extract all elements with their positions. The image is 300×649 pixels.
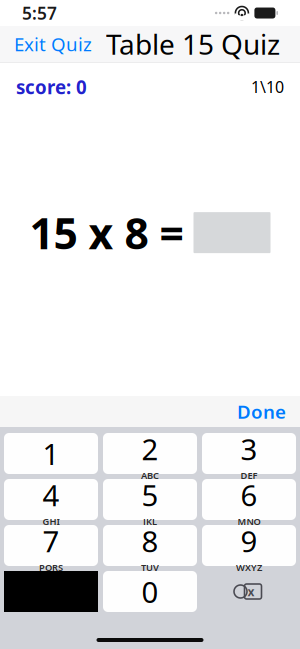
staticText: 1\10 [251,76,284,97]
button[interactable]: 9 [202,525,296,566]
button[interactable]: 7 [4,525,98,566]
button[interactable]: 0 [103,571,197,612]
staticText: TUV [141,561,159,574]
staticText: PQRS [39,561,63,574]
staticText: Exit Quiz [14,32,92,56]
staticText: WXYZ [236,561,262,574]
button[interactable]: 6 [202,479,296,520]
button[interactable]: 3 [202,433,296,474]
staticText: JKL [143,515,157,528]
button[interactable]: 5 [103,479,197,520]
button[interactable]: 2 [103,433,197,474]
staticText: 1 [42,434,59,473]
staticText: 4 [42,475,59,514]
button[interactable]: 8 [103,525,197,566]
staticText: 8 [141,521,158,560]
staticText: Table 15 Quiz [106,25,280,63]
staticText: DEF [240,469,257,482]
staticText: ABC [141,469,159,482]
staticText: 7 [42,521,59,560]
staticText: 3 [240,429,257,468]
staticText: x [247,583,254,599]
staticText: 5:57 [22,1,57,24]
staticText: 9 [240,521,257,560]
staticText: 2 [141,429,158,468]
staticText: score: 0 [16,74,87,99]
button[interactable]: Exit Quiz [0,26,106,62]
button[interactable]: Delete [202,571,296,612]
button[interactable]: Done [223,396,300,427]
staticText: 0 [141,572,158,611]
staticText: 6 [240,475,257,514]
staticText: 5 [141,475,158,514]
staticText: 15 x 8 = [29,204,183,261]
staticText: MNO [237,515,260,528]
button[interactable]: 1 [4,433,98,474]
button[interactable]: 4 [4,479,98,520]
staticText: GHI [42,515,59,528]
staticText: Done [237,399,286,424]
